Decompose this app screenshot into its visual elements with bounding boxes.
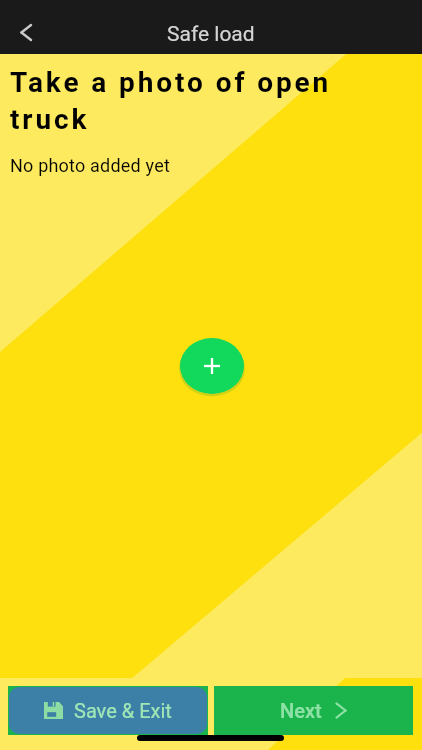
button[interactable]: Add photo — [180, 338, 244, 394]
button[interactable]: Next — [214, 686, 413, 735]
staticText: Save & Exit — [74, 699, 172, 722]
staticText: Take a photo of open truck — [10, 66, 360, 136]
button[interactable]: Save & Exit — [9, 687, 207, 734]
staticText: Safe load — [167, 22, 255, 47]
staticText: Next — [280, 699, 322, 722]
staticText: No photo added yet — [10, 155, 170, 176]
button[interactable]: Back — [6, 12, 46, 52]
